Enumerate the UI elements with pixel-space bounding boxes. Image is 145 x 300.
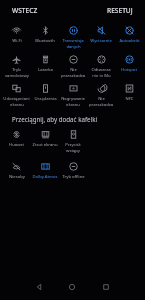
button[interactable]: Urządzenia [31,81,59,104]
button[interactable]: Wyciszenie [87,23,115,46]
button[interactable]: WSTECZ [0,2,50,19]
staticText: Bluetooth [35,38,55,44]
button[interactable]: Nie przeszkadzać [59,52,87,81]
staticText: Latarka [38,67,53,73]
staticText: Przeciągnij, aby dodać kafelki [12,115,98,123]
staticText: Nagrywanie [61,96,85,102]
staticText: wstępy [66,148,80,154]
button[interactable]: RESETUJ [95,2,145,19]
staticText: Dolby Atmos [32,174,58,180]
staticText: przeszkadzać [88,102,114,108]
staticText: Hotspot [121,67,137,73]
staticText: przeszkadzać [60,73,86,79]
button[interactable]: Przycisk wstępy [59,127,87,156]
button[interactable]: Tryb samolotowy [2,52,31,81]
button[interactable]: Transmisja danych [59,23,87,52]
button[interactable]: Back [22,274,55,300]
staticText: RESETUJ [107,6,133,15]
button[interactable]: Recents [89,274,123,300]
button[interactable]: Autoobrót [115,23,143,46]
staticText: Niesoby [9,174,25,180]
button[interactable]: Zrzut ekranu [31,127,59,150]
staticText: Nie [70,67,77,73]
staticText: Autoobrót [119,38,140,44]
staticText: danych [66,44,81,50]
staticText: Udostępnianie [3,96,30,102]
button[interactable]: Odtwarza nie in Mu [87,52,115,81]
staticText: Huawei Share [3,142,30,148]
button[interactable]: Udostępnianie ekranu [2,81,31,110]
staticText: Odtwarza [91,67,111,73]
button[interactable]: NFC [115,81,143,104]
staticText: Wi-Fi [12,38,22,44]
staticText: Wyciszenie [90,38,112,44]
staticText: samolotowy [5,73,29,79]
button[interactable]: Niesoby [2,159,31,182]
staticText: Tryb [12,67,21,73]
staticText: WSTECZ [12,6,38,15]
staticText: Nie [98,96,105,102]
button[interactable]: Home [55,274,89,300]
staticText: Zrzut ekranu [32,142,58,148]
button[interactable]: Tryb offline [59,159,87,182]
staticText: nie in Mu [92,73,111,79]
button[interactable]: Nagrywanie ekranu [59,81,87,110]
staticText: Tryb offline [62,174,85,180]
button[interactable]: Huawei Share [2,127,31,150]
staticText: Przycisk [65,142,81,148]
button[interactable]: Nie przeszkadzać [87,81,115,110]
button[interactable]: Wi-Fi [2,23,31,46]
staticText: Urządzenia [34,96,57,102]
staticText: ekranu [66,102,80,108]
button[interactable]: Dolby Atmos [31,159,59,182]
staticText: NFC [125,96,134,102]
button[interactable]: Bluetooth [31,23,59,46]
button[interactable]: Latarka [31,52,59,75]
staticText: Transmisja [62,38,84,44]
staticText: ekranu [10,102,24,108]
button[interactable]: Hotspot [115,52,143,75]
